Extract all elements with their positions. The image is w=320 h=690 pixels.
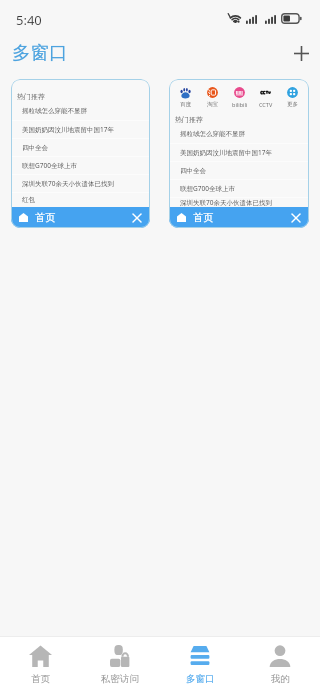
staticText: 热门推荐 xyxy=(175,115,203,124)
staticText: 淘宝 xyxy=(207,101,218,108)
button[interactable]: 百度 xyxy=(169,79,309,228)
button[interactable]: bilibili xyxy=(227,87,252,108)
button[interactable]: Close window xyxy=(289,211,302,224)
staticText: 联想G700全球上市 xyxy=(22,161,77,170)
button[interactable]: 私密访问 xyxy=(80,637,160,690)
staticText: 多窗口 xyxy=(12,41,68,64)
button[interactable]: 热门推荐 xyxy=(11,79,150,228)
button[interactable]: 首页 xyxy=(177,207,302,228)
staticText: 首页 xyxy=(35,211,56,224)
button[interactable]: CCTV xyxy=(253,87,278,108)
staticText: 四中全会 xyxy=(22,144,48,152)
staticText: 私密访问 xyxy=(101,673,139,685)
staticText: 我的 xyxy=(271,673,290,685)
button[interactable]: Close window xyxy=(130,211,143,224)
staticText: 多窗口 xyxy=(186,673,215,685)
staticText: 四中全会 xyxy=(180,167,206,175)
staticText: 首页 xyxy=(193,211,214,224)
staticText: 热门推荐 xyxy=(17,92,45,101)
staticText: 首页 xyxy=(31,673,50,685)
button[interactable]: 百度 xyxy=(173,87,198,108)
button[interactable]: 更多 xyxy=(280,87,305,108)
button[interactable]: 首页 xyxy=(19,207,143,228)
staticText: 深圳失联70余天小伙遗体已找到 xyxy=(180,198,272,207)
staticText: 联想G700全球上市 xyxy=(180,184,235,193)
button[interactable]: 首页 xyxy=(0,637,80,690)
staticText: 5:40 xyxy=(16,11,42,29)
staticText: 深圳失联70余天小伙遗体已找到 xyxy=(22,179,114,188)
staticText: CCTV xyxy=(259,101,273,108)
button[interactable]: 多窗口 xyxy=(160,637,240,690)
staticText: 摇粒绒怎么穿能不显胖 xyxy=(180,130,245,138)
staticText: 百度 xyxy=(180,101,191,108)
staticText: 美国奶奶因汶川地震留中国17年 xyxy=(22,125,114,134)
staticText: bilibili xyxy=(232,101,248,108)
staticText: 摇粒绒怎么穿能不显胖 xyxy=(22,107,87,115)
staticText: 红包 xyxy=(22,196,35,204)
button[interactable]: 我的 xyxy=(240,637,320,690)
button[interactable]: New window xyxy=(288,40,315,67)
button[interactable]: 淘宝 xyxy=(200,87,225,108)
staticText: 美国奶奶因汶川地震留中国17年 xyxy=(180,148,272,157)
staticText: 更多 xyxy=(287,101,298,108)
